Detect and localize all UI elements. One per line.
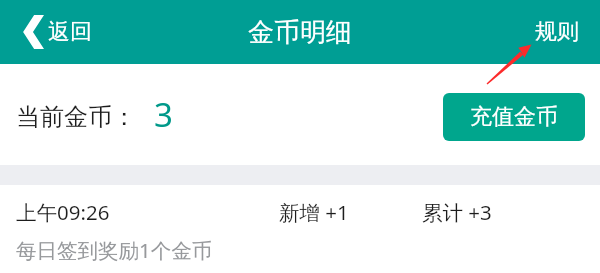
button[interactable]: 充值金币 <box>443 93 585 141</box>
staticText: 累计 +3 <box>422 198 492 226</box>
staticText: 3 <box>154 92 173 137</box>
other: Back <box>23 15 44 49</box>
button[interactable]: Back <box>0 0 104 64</box>
staticText: 返回 <box>48 18 92 46</box>
button[interactable]: 规则 <box>515 0 600 64</box>
staticText: 金币明细 <box>248 16 352 49</box>
staticText: 充值金币 <box>470 103 558 131</box>
staticText: 每日签到奖励1个金币 <box>16 236 213 264</box>
button[interactable]: 上午09:26 <box>0 185 600 264</box>
staticText: 规则 <box>535 18 579 46</box>
staticText: 当前金币： <box>16 102 136 132</box>
staticText: 上午09:26 <box>16 198 110 226</box>
staticText: 新增 +1 <box>279 198 349 226</box>
